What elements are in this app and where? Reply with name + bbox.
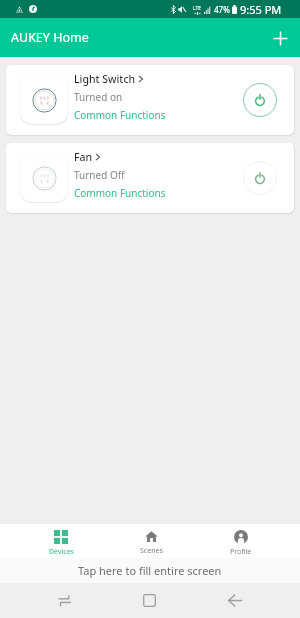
button[interactable]: Common Functions (74, 186, 166, 200)
button[interactable]: Turn off (242, 82, 278, 118)
button[interactable]: Recent apps (21, 583, 107, 618)
staticText: LTE (193, 5, 202, 12)
staticText: Turned Off (74, 168, 125, 182)
button[interactable]: Home (107, 583, 192, 618)
button[interactable]: Light Switch (6, 65, 294, 135)
button[interactable]: Scenes (106, 524, 196, 558)
button[interactable]: Fan (6, 143, 294, 213)
staticText: Turned on (74, 90, 123, 104)
staticText: AUKEY Home (11, 29, 89, 46)
button[interactable]: Add device (267, 25, 293, 51)
staticText: Devices (49, 547, 74, 557)
button[interactable]: Profile (196, 524, 286, 558)
staticText: Profile (230, 547, 252, 557)
button[interactable]: Tap here to fill entire screen (0, 558, 300, 583)
staticText: 47% (214, 4, 230, 15)
button[interactable]: Devices (16, 524, 106, 558)
button[interactable]: Turn on (242, 160, 278, 196)
staticText: Tap here to fill entire screen (78, 563, 222, 578)
staticText: Fan (74, 150, 93, 164)
button[interactable]: Back (192, 583, 277, 618)
staticText: 9:55 PM (240, 2, 282, 17)
staticText: Light Switch (74, 72, 136, 86)
staticText: Scenes (140, 546, 163, 556)
button[interactable]: Common Functions (74, 108, 166, 122)
